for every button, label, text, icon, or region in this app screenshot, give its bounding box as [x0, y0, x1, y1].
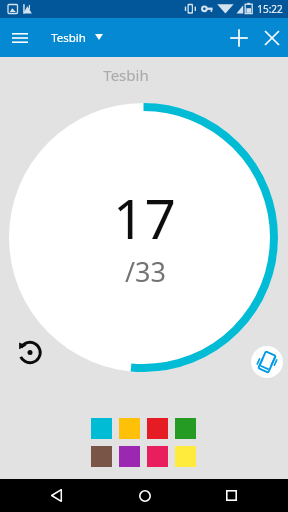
- staticText: 17: [113, 180, 176, 255]
- button[interactable]: Open navigation menu: [0, 18, 39, 57]
- button[interactable]: Add: [219, 18, 258, 57]
- button[interactable]: Recent apps: [215, 479, 248, 512]
- button[interactable]: Reset counter: [14, 337, 46, 369]
- button[interactable]: Close: [252, 18, 288, 57]
- staticText: Tesbih: [103, 65, 149, 85]
- staticText: 15:22: [257, 2, 283, 16]
- button[interactable]: Vibration: [251, 346, 283, 378]
- staticText: /33: [125, 253, 166, 290]
- button[interactable]: Back: [40, 479, 73, 512]
- staticText: Tesbih: [51, 30, 86, 46]
- button[interactable]: Home: [128, 479, 161, 512]
- button[interactable]: Tesbih: [51, 24, 103, 52]
